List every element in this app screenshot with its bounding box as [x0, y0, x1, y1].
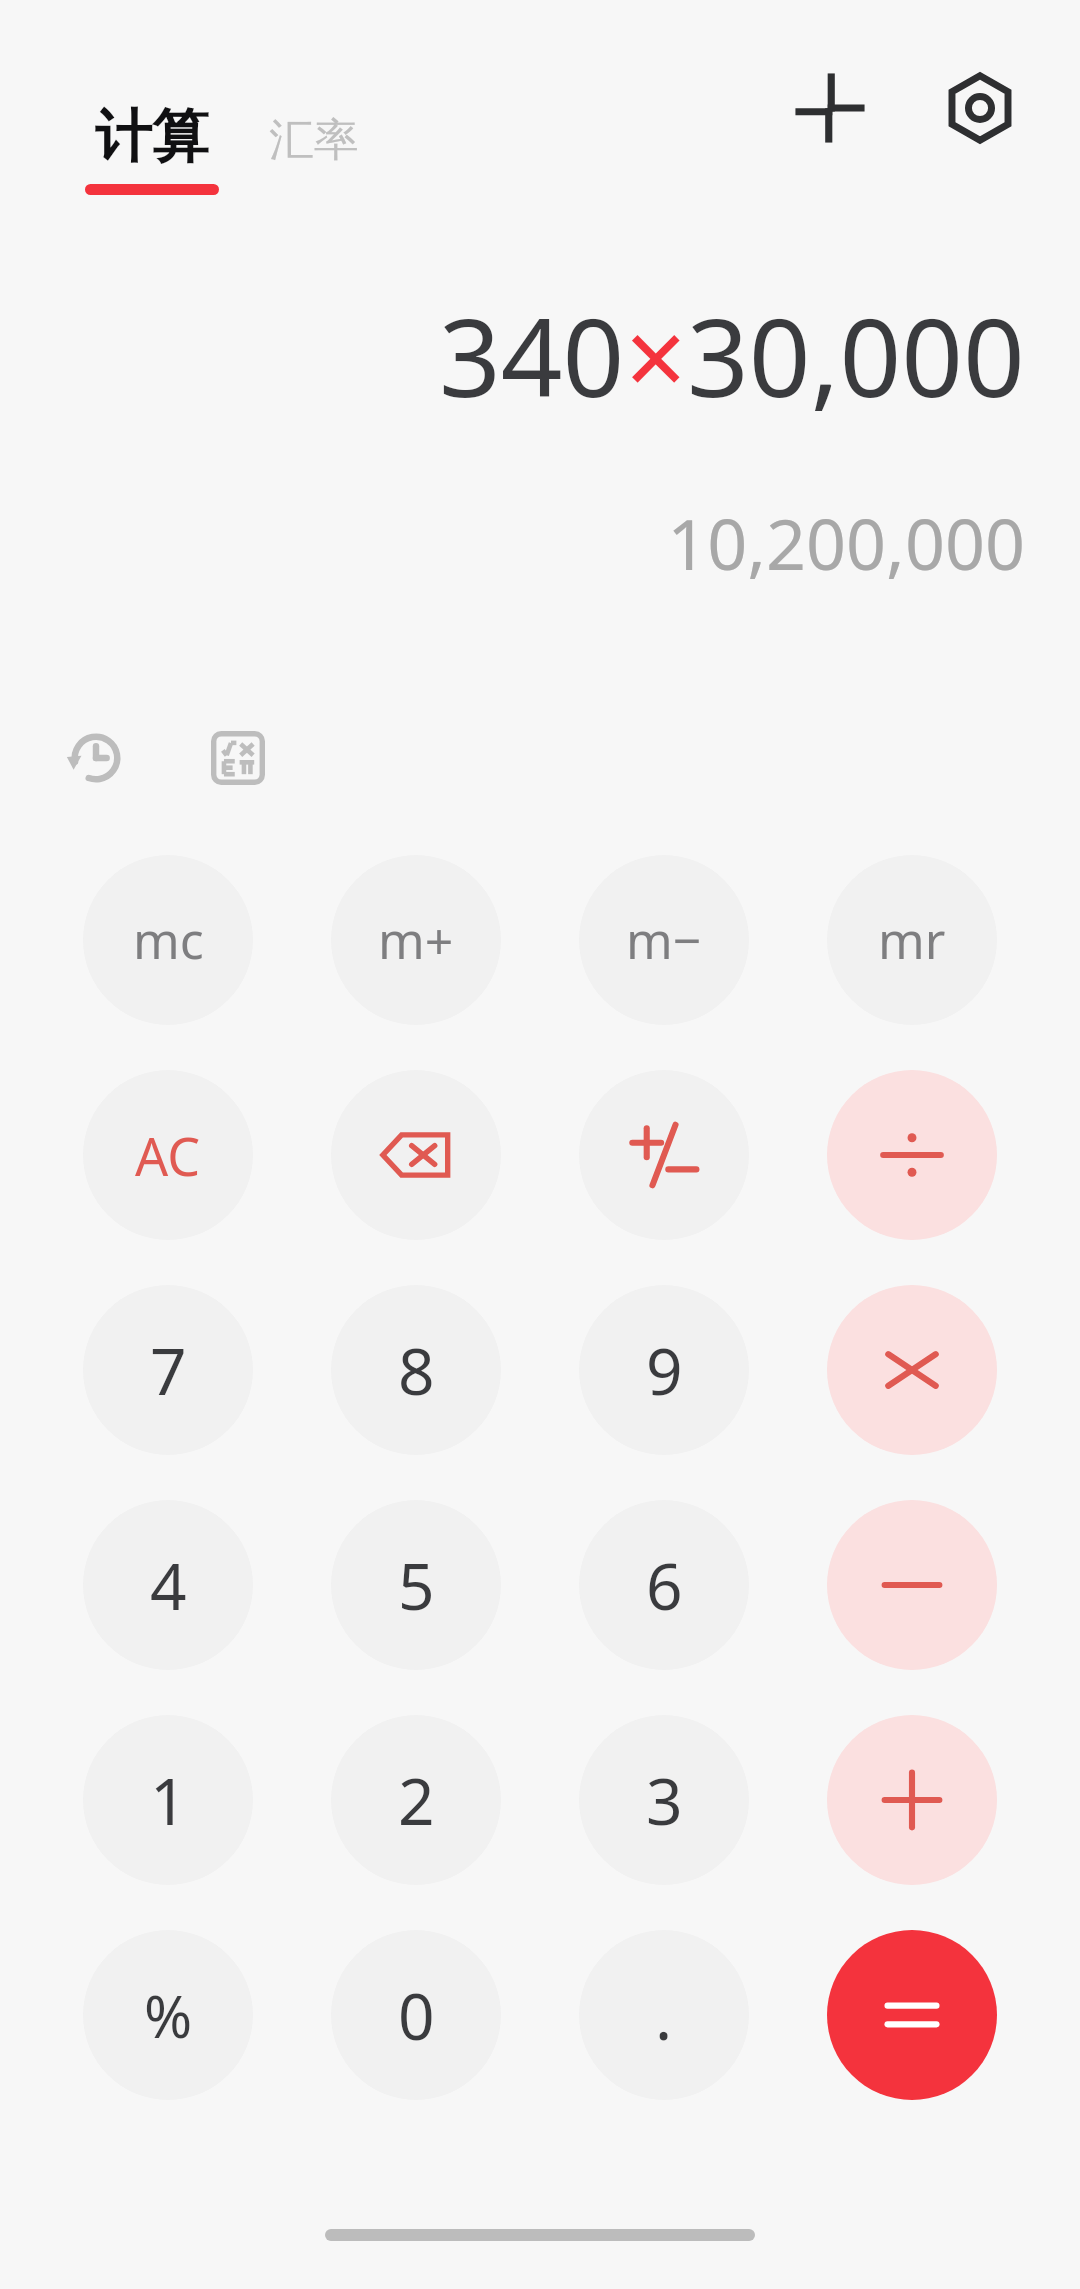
staticText: 10,200,000 [667, 495, 1025, 590]
button[interactable]: 5 [331, 1500, 501, 1670]
staticText: 3 [646, 1757, 683, 1844]
button[interactable]: 0 [331, 1930, 501, 2100]
staticText: 1 [150, 1757, 187, 1844]
button[interactable]: 4 [83, 1500, 253, 1670]
button[interactable]: Equals [827, 1930, 997, 2100]
staticText: 9 [646, 1327, 683, 1414]
button[interactable]: Multiply [827, 1285, 997, 1455]
staticText: m− [626, 906, 702, 974]
button[interactable]: Plus minus [579, 1070, 749, 1240]
staticText: 5 [398, 1542, 435, 1629]
staticText: 4 [150, 1542, 187, 1629]
staticText: mc [133, 906, 204, 974]
button[interactable]: . [579, 1930, 749, 2100]
staticText: 8 [398, 1327, 435, 1414]
button[interactable]: Plus [827, 1715, 997, 1885]
staticText: 7 [150, 1327, 187, 1414]
button[interactable]: Minus [827, 1500, 997, 1670]
button[interactable]: Divide [827, 1070, 997, 1240]
button[interactable]: Scientific [190, 710, 286, 806]
staticText: 340 [439, 282, 625, 429]
button[interactable]: 2 [331, 1715, 501, 1885]
staticText: 0 [398, 1972, 435, 2059]
button[interactable]: mr [827, 855, 997, 1025]
button[interactable]: Pin [770, 48, 890, 168]
button[interactable]: 汇率 [269, 112, 359, 169]
button[interactable]: 8 [331, 1285, 501, 1455]
staticText: 30,000 [687, 282, 1025, 429]
button[interactable]: 6 [579, 1500, 749, 1670]
button[interactable]: AC [83, 1070, 253, 1240]
button[interactable]: 1 [83, 1715, 253, 1885]
staticText: 汇率 [269, 112, 359, 169]
button[interactable]: Settings [920, 48, 1040, 168]
button[interactable]: 计算 [85, 101, 219, 195]
button[interactable]: m− [579, 855, 749, 1025]
button[interactable]: History [48, 710, 144, 806]
staticText: . [655, 1972, 673, 2059]
button[interactable]: 7 [83, 1285, 253, 1455]
button[interactable]: 9 [579, 1285, 749, 1455]
button[interactable]: mc [83, 855, 253, 1025]
button[interactable]: % [83, 1930, 253, 2100]
button[interactable]: Backspace [331, 1070, 501, 1240]
button[interactable]: 3 [579, 1715, 749, 1885]
staticText: 计算 [95, 101, 209, 173]
staticText: mr [878, 906, 946, 974]
staticText: 6 [646, 1542, 683, 1629]
button[interactable]: m+ [331, 855, 501, 1025]
staticText: AC [135, 1120, 201, 1191]
staticText: × [625, 282, 687, 429]
staticText: % [144, 1976, 193, 2055]
staticText: 2 [398, 1757, 435, 1844]
staticText: m+ [378, 906, 454, 974]
